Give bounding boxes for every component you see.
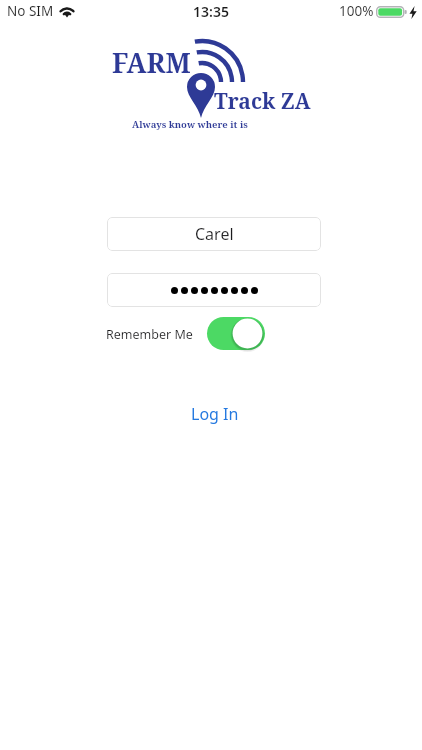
staticText: 100% [339,2,374,20]
staticText: Track ZA [214,87,311,116]
button[interactable] [107,273,321,307]
button[interactable]: Carel [107,217,321,251]
staticText: Carel [195,223,234,245]
button[interactable]: Remember Me [106,318,193,350]
staticText: 13:35 [193,2,229,21]
staticText: No SIM [7,2,54,20]
staticText: Always know where it is [132,118,248,131]
button[interactable]: Remember me toggle [207,317,265,350]
staticText: Log In [191,403,239,425]
staticText: Remember Me [106,326,193,343]
staticText: FARM [112,45,191,81]
button[interactable]: Log In [4,399,422,429]
